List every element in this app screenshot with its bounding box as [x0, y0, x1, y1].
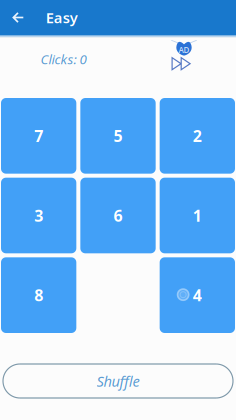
button[interactable]: 3	[1, 178, 76, 253]
button[interactable]: 5	[80, 98, 156, 174]
staticText: 5	[113, 125, 122, 146]
button[interactable]: 8	[1, 257, 76, 333]
button[interactable]: Back	[0, 0, 37, 35]
staticText: 2	[193, 125, 202, 146]
staticText: AD	[178, 44, 189, 55]
staticText: 6	[113, 205, 122, 226]
staticText: 4	[193, 284, 202, 306]
button[interactable]: 4	[160, 257, 235, 333]
button[interactable]: 1	[160, 178, 235, 253]
button[interactable]: 7	[1, 98, 76, 174]
button[interactable]: 6	[80, 178, 156, 253]
button[interactable]: Watch ad	[171, 41, 197, 74]
staticText: 7	[34, 125, 43, 146]
staticText: Shuffle	[96, 371, 139, 391]
staticText: 3	[34, 205, 43, 226]
staticText: Clicks: 0	[40, 50, 86, 68]
button[interactable]: 2	[160, 98, 235, 174]
staticText: 1	[193, 205, 202, 226]
button[interactable]: Shuffle	[3, 364, 233, 398]
staticText: Easy	[46, 8, 78, 27]
staticText: 8	[34, 284, 43, 306]
